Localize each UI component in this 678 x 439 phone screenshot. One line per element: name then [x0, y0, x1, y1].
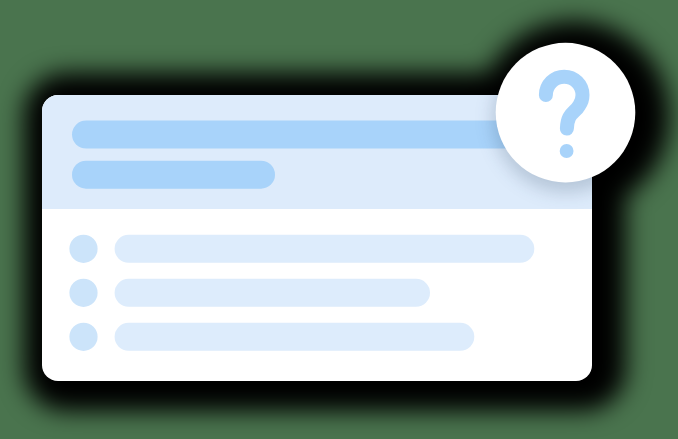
button[interactable]: Help — [496, 43, 636, 183]
